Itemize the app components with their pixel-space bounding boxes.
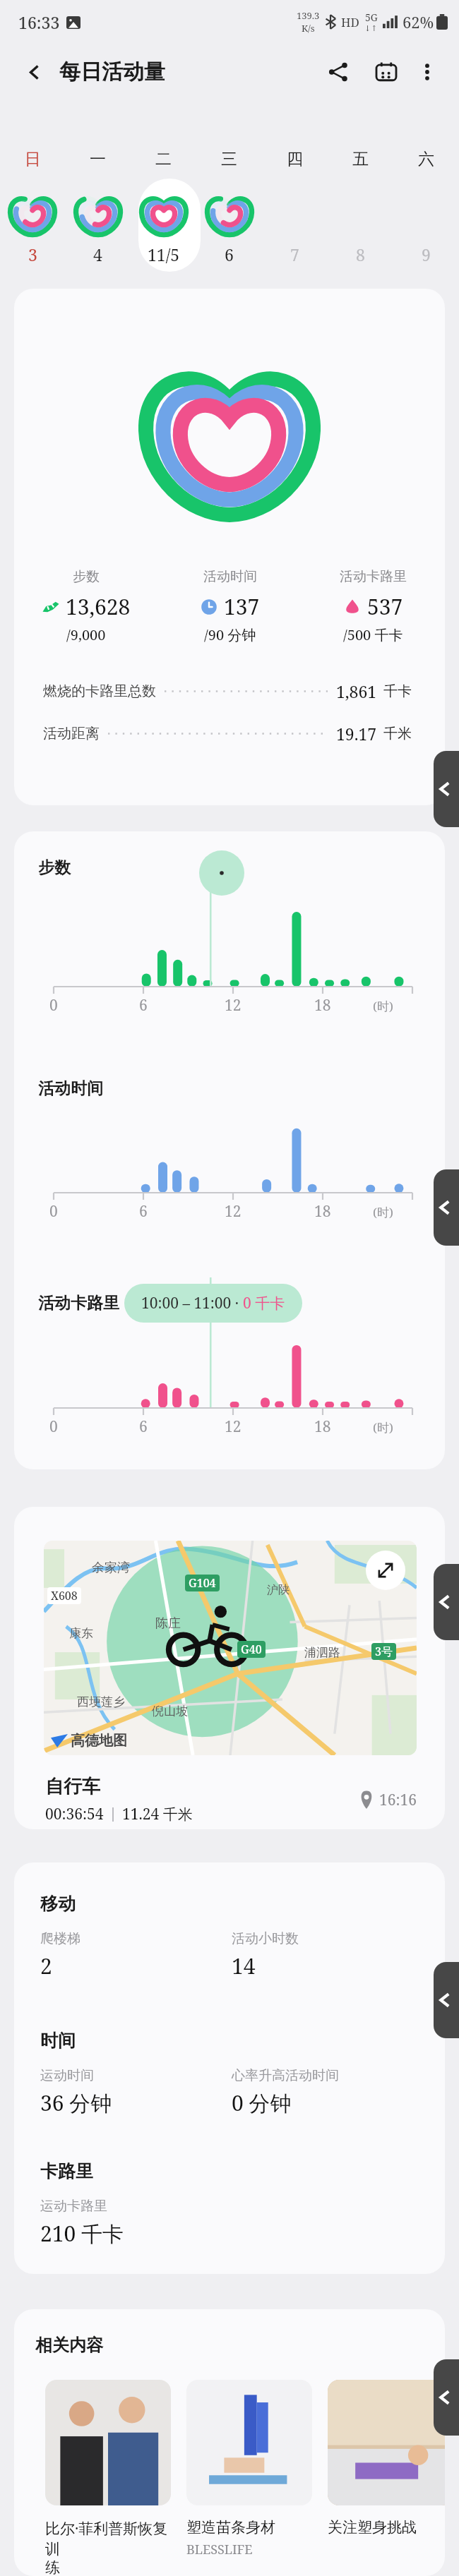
staticText: 13,628 — [66, 592, 131, 621]
staticText: 12 — [225, 1201, 242, 1222]
staticText: 六 — [418, 149, 434, 169]
staticText: 爬楼梯 — [40, 1930, 81, 1947]
staticText: 0 — [49, 1201, 58, 1222]
staticText: X608 — [51, 1588, 78, 1603]
button[interactable]: 9 — [393, 241, 459, 267]
staticText: 四 — [287, 149, 303, 169]
button[interactable]: More options — [410, 54, 445, 90]
staticText: 心率升高活动时间 — [232, 2067, 339, 2084]
staticText: 16:33 — [18, 11, 60, 33]
button[interactable]: 8 — [328, 241, 393, 267]
staticText: 活动距离 — [43, 725, 100, 742]
button[interactable]: 6 — [196, 241, 262, 267]
staticText: BLESSLIFE — [186, 2541, 253, 2558]
staticText: 步数 — [73, 568, 100, 585]
button[interactable]: 7 — [262, 241, 328, 267]
staticText: 6 — [139, 1416, 148, 1437]
staticText: 1,861 — [336, 680, 377, 702]
staticText: (时) — [373, 1419, 393, 1436]
staticText: 139.3 — [297, 9, 320, 22]
staticText: 16:16 — [379, 1790, 417, 1810]
staticText: 0 — [49, 1416, 58, 1437]
button[interactable]: Calendar — [369, 54, 404, 90]
button[interactable]: Edge panel — [434, 751, 459, 827]
button[interactable]: 塑造苗条身材 — [186, 2380, 312, 2558]
staticText: 一 — [90, 149, 106, 169]
staticText: 千米 — [383, 725, 412, 742]
staticText: 537 — [367, 592, 403, 621]
staticText: 18 — [314, 995, 331, 1016]
staticText: 6 — [139, 995, 148, 1016]
staticText: 62% — [403, 11, 434, 32]
staticText: 5G — [365, 11, 378, 24]
staticText: 4 — [93, 243, 102, 265]
staticText: 沪陕 — [267, 1583, 290, 1597]
staticText: 12 — [225, 1416, 242, 1437]
staticText: 137 — [224, 592, 260, 621]
button[interactable]: 比尔·菲利普斯恢复训 — [45, 2380, 171, 2576]
staticText: /9,000 — [66, 625, 106, 644]
staticText: 18 — [314, 1416, 331, 1437]
staticText: 三 — [221, 149, 237, 169]
staticText: 0 千卡 — [243, 1293, 285, 1313]
staticText: 活动小时数 — [232, 1930, 299, 1947]
staticText: 练 — [45, 2558, 60, 2576]
staticText: HD — [341, 14, 359, 30]
staticText: /90 分钟 — [204, 625, 256, 644]
button[interactable]: 3 — [0, 241, 65, 267]
staticText: K/s — [302, 22, 315, 35]
staticText: 西埂莲乡 — [77, 1695, 125, 1709]
staticText: 步数 — [38, 857, 71, 878]
staticText: 36 分钟 — [40, 2088, 112, 2117]
staticText: 每日活动量 — [59, 59, 165, 85]
staticText: 12 — [225, 995, 242, 1016]
staticText: 3号 — [375, 1644, 393, 1659]
staticText: 活动卡路里 — [340, 568, 407, 585]
staticText: 9 — [422, 243, 431, 265]
button[interactable]: Edge panel — [434, 2359, 459, 2436]
staticText: 7 — [290, 243, 299, 265]
staticText: 14 — [232, 1951, 256, 1980]
staticText: 日 — [25, 149, 41, 169]
staticText: (时) — [373, 1204, 393, 1220]
staticText: ↓↑ — [364, 24, 378, 33]
button[interactable]: Edge panel — [434, 1564, 459, 1640]
button[interactable]: 11/5 — [131, 241, 196, 267]
staticText: 移动 — [40, 1893, 76, 1915]
staticText: 0 分钟 — [232, 2088, 292, 2117]
staticText: 8 — [356, 243, 365, 265]
button[interactable]: 关注塑身挑战 — [328, 2380, 445, 2536]
staticText: 时间 — [40, 2030, 76, 2052]
staticText: 塑造苗条身材 — [186, 2518, 275, 2536]
button[interactable]: Share — [321, 54, 356, 90]
button[interactable]: Edge panel — [434, 1962, 459, 2038]
staticText: 相关内容 — [35, 2335, 103, 2356]
staticText: 6 — [139, 1201, 148, 1222]
staticText: 高德地图 — [71, 1732, 127, 1750]
staticText: 运动卡路里 — [40, 2198, 107, 2215]
staticText: 余家湾 — [92, 1560, 130, 1576]
staticText: 卡路里 — [40, 2160, 93, 2182]
staticText: 自行车 — [45, 1775, 100, 1798]
staticText: 210 千卡 — [40, 2219, 124, 2248]
staticText: 康东 — [69, 1626, 93, 1641]
button[interactable]: Back — [18, 56, 49, 88]
staticText: 关注塑身挑战 — [328, 2518, 417, 2536]
staticText: 二 — [155, 149, 172, 169]
staticText: 倪山坡 — [152, 1704, 188, 1719]
staticText: 2 — [40, 1951, 52, 1980]
staticText: 6 — [225, 243, 234, 265]
staticText: 陈庄 — [155, 1615, 181, 1632]
staticText: 千卡 — [383, 682, 412, 700]
staticText: 活动时间 — [203, 568, 257, 585]
button[interactable]: Edge panel — [434, 1169, 459, 1246]
staticText: /500 千卡 — [343, 625, 403, 644]
button[interactable]: Expand map — [366, 1551, 405, 1590]
button[interactable]: 4 — [65, 241, 131, 267]
staticText: 19.17 — [336, 723, 377, 745]
staticText: (时) — [373, 998, 393, 1014]
staticText: 11/5 — [148, 243, 180, 265]
staticText: 10:00 – 11:00 · — [141, 1293, 243, 1313]
staticText: 活动卡路里 — [38, 1293, 119, 1313]
staticText: 00:36:54 — [45, 1804, 104, 1824]
